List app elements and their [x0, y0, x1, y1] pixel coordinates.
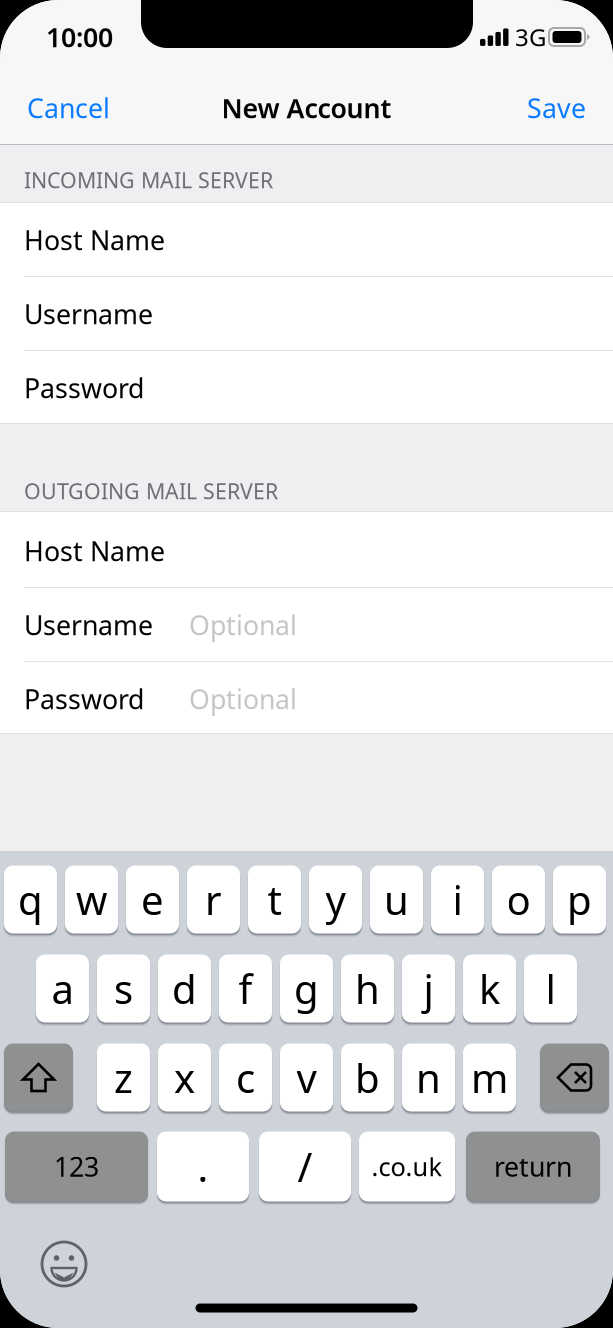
button[interactable]: t — [248, 863, 301, 935]
staticText: c — [236, 1051, 255, 1104]
button[interactable]: Delete — [540, 1041, 609, 1113]
staticText: x — [174, 1051, 195, 1104]
button[interactable]: n — [402, 1041, 455, 1113]
staticText: p — [567, 873, 592, 926]
staticText: k — [479, 962, 500, 1015]
button[interactable]: x — [158, 1041, 211, 1113]
staticText: a — [51, 962, 73, 1015]
staticText: Password — [24, 681, 144, 717]
button[interactable]: p — [553, 863, 606, 935]
button[interactable]: / — [259, 1129, 351, 1203]
staticText: New Account — [221, 90, 391, 126]
staticText: . — [197, 1140, 208, 1193]
staticText: i — [452, 873, 462, 926]
button[interactable]: b — [341, 1041, 394, 1113]
button[interactable]: o — [492, 863, 545, 935]
staticText: f — [238, 962, 252, 1015]
button[interactable]: c — [219, 1041, 272, 1113]
staticText: return — [494, 1149, 572, 1184]
staticText: l — [545, 962, 555, 1015]
staticText: Cancel — [27, 90, 110, 126]
staticText: b — [355, 1051, 380, 1104]
staticText: y — [325, 873, 345, 926]
staticText: e — [141, 873, 164, 926]
staticText: j — [423, 962, 433, 1015]
button[interactable]: e — [126, 863, 179, 935]
staticText: h — [355, 962, 380, 1015]
button[interactable]: return — [466, 1129, 600, 1203]
staticText: u — [384, 873, 409, 926]
button[interactable]: Save — [486, 77, 586, 139]
staticText: 123 — [54, 1149, 99, 1184]
staticText: 10:00 — [46, 19, 113, 55]
button[interactable]: a — [36, 952, 89, 1024]
button[interactable]: f — [219, 952, 272, 1024]
staticText: Optional — [189, 607, 297, 643]
staticText: / — [297, 1140, 312, 1193]
staticText: m — [471, 1051, 508, 1104]
staticText: 3G — [515, 21, 546, 53]
button[interactable]: m — [463, 1041, 516, 1113]
button[interactable]: d — [158, 952, 211, 1024]
button[interactable]: y — [309, 863, 362, 935]
staticText: q — [18, 873, 43, 926]
button[interactable]: l — [524, 952, 577, 1024]
button[interactable]: r — [187, 863, 240, 935]
staticText: Username — [24, 296, 153, 332]
button[interactable]: i — [431, 863, 484, 935]
button[interactable]: k — [463, 952, 516, 1024]
staticText: t — [267, 873, 281, 926]
button[interactable]: 123 — [5, 1129, 148, 1203]
staticText: n — [416, 1051, 441, 1104]
button[interactable]: Cancel — [27, 77, 152, 139]
staticText: Host Name — [24, 533, 165, 569]
staticText: .co.uk — [371, 1150, 442, 1183]
staticText: g — [294, 962, 319, 1015]
staticText: r — [205, 873, 222, 926]
button[interactable]: v — [280, 1041, 333, 1113]
button[interactable]: g — [280, 952, 333, 1024]
staticText: v — [296, 1051, 316, 1104]
button[interactable]: j — [402, 952, 455, 1024]
staticText: Host Name — [24, 222, 165, 258]
button[interactable]: w — [65, 863, 118, 935]
button[interactable]: u — [370, 863, 423, 935]
button[interactable]: .co.uk — [359, 1129, 455, 1203]
button[interactable]: h — [341, 952, 394, 1024]
button[interactable]: . — [157, 1129, 249, 1203]
staticText: s — [114, 962, 133, 1015]
staticText: d — [172, 962, 197, 1015]
button[interactable]: Emoji keyboard — [40, 1240, 88, 1288]
staticText: w — [76, 873, 107, 926]
staticText: Save — [527, 90, 586, 126]
button[interactable]: Shift — [4, 1041, 73, 1113]
staticText: o — [506, 873, 530, 926]
button[interactable]: z — [97, 1041, 150, 1113]
button[interactable]: q — [4, 863, 57, 935]
staticText: Optional — [189, 681, 297, 717]
staticText: Password — [24, 370, 144, 406]
staticText: INCOMING MAIL SERVER — [24, 166, 273, 194]
staticText: Username — [24, 607, 153, 643]
staticText: OUTGOING MAIL SERVER — [24, 477, 278, 505]
staticText: z — [114, 1051, 133, 1104]
button[interactable]: s — [97, 952, 150, 1024]
